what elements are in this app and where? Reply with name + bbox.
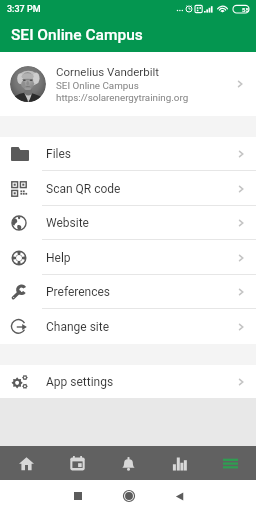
button[interactable]: Home	[0, 446, 52, 480]
staticText: Help	[46, 251, 71, 265]
staticText: Cornelius Vanderbilt	[56, 65, 160, 78]
staticText: SEI Online Campus	[11, 26, 143, 44]
staticText: SEI Online Campus	[56, 80, 139, 91]
button[interactable]: Cornelius Vanderbilt	[0, 52, 256, 116]
button[interactable]: Notifications	[103, 446, 154, 480]
button[interactable]: Home	[103, 480, 154, 512]
staticText: 55	[242, 6, 249, 13]
button[interactable]: App settings	[0, 365, 256, 398]
staticText: https://solarenergytraining.org	[56, 92, 189, 103]
button[interactable]: Website	[0, 206, 256, 240]
staticText: App settings	[46, 375, 114, 389]
button[interactable]: Back	[154, 480, 205, 512]
button[interactable]: Reports	[154, 446, 205, 480]
staticText: Scan QR code	[46, 182, 121, 196]
button[interactable]: Files	[0, 137, 256, 171]
staticText: Change site	[46, 320, 110, 334]
staticText: Website	[46, 216, 89, 230]
button[interactable]: Recent apps	[52, 480, 103, 512]
button[interactable]: Scan QR code	[0, 171, 256, 206]
staticText: 3:37 PM	[7, 4, 41, 15]
staticText: Preferences	[46, 285, 111, 299]
button[interactable]: Help	[0, 240, 256, 275]
button[interactable]: Calendar	[52, 446, 103, 480]
button[interactable]: Change site	[0, 309, 256, 344]
button[interactable]: Menu	[205, 446, 256, 480]
staticText: Files	[46, 147, 72, 161]
button[interactable]: Preferences	[0, 275, 256, 309]
